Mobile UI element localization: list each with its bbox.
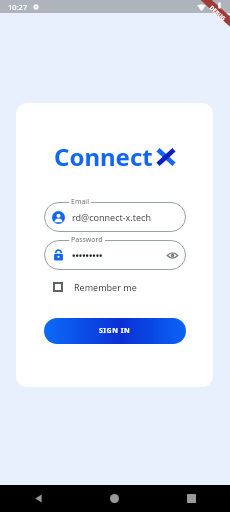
button[interactable]: SIGN IN [44, 318, 186, 344]
button[interactable]: Home [76, 485, 153, 512]
staticText: 10:27 [8, 2, 28, 12]
staticText: Password [71, 235, 103, 245]
button[interactable]: Show password [161, 244, 183, 266]
staticText: rd@connect-x.tech [72, 211, 151, 223]
staticText: DEBUG [209, 4, 227, 22]
button[interactable]: Remember me [50, 278, 140, 296]
button[interactable]: ••••••••• [44, 240, 186, 270]
staticText: Remember me [74, 281, 137, 293]
staticText: Connect [54, 140, 153, 173]
staticText: ••••••••• [72, 249, 103, 261]
button[interactable]: rd@connect-x.tech [44, 202, 186, 232]
staticText: SIGN IN [99, 326, 131, 336]
button[interactable]: Recent apps [153, 485, 230, 512]
staticText: Email [71, 197, 89, 207]
button[interactable]: Back [0, 485, 76, 512]
